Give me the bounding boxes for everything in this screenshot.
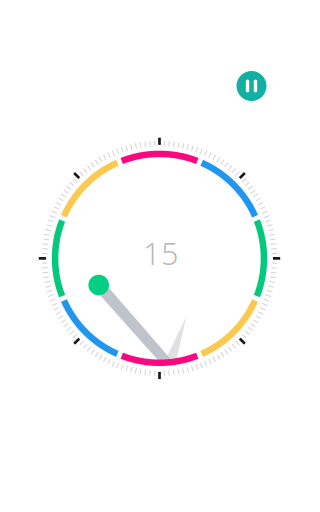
button[interactable]: Pause timer: [236, 71, 266, 101]
staticText: 15: [143, 233, 179, 273]
